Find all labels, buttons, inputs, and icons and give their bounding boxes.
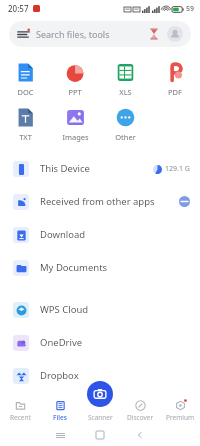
button[interactable]: Scanner bbox=[87, 381, 113, 407]
button[interactable]: Back bbox=[120, 424, 160, 446]
staticText: DOC bbox=[17, 87, 34, 97]
staticText: Evernote bbox=[40, 402, 190, 415]
button[interactable]: PDF bbox=[150, 59, 200, 100]
button[interactable]: Collapse bbox=[179, 196, 190, 207]
button[interactable]: Premium bbox=[160, 399, 200, 424]
staticText: XLS bbox=[119, 87, 132, 97]
button[interactable]: Home bbox=[80, 424, 120, 446]
staticText: 59 bbox=[186, 4, 195, 14]
button[interactable]: Dropbox bbox=[0, 359, 200, 392]
button[interactable]: TXT bbox=[0, 104, 50, 145]
button[interactable]: Received from other apps bbox=[0, 185, 200, 218]
button[interactable]: Recents bbox=[40, 424, 80, 446]
button[interactable]: Scanner bbox=[80, 399, 120, 424]
staticText: 129.1 G bbox=[165, 164, 190, 174]
staticText: PPT bbox=[68, 87, 82, 97]
staticText: TXT bbox=[19, 132, 32, 142]
staticText: OneDrive bbox=[40, 336, 190, 349]
staticText: WPS Cloud bbox=[40, 303, 190, 316]
staticText: Discover bbox=[127, 413, 154, 422]
button[interactable]: WPS Cloud bbox=[0, 293, 200, 326]
staticText: Search files, tools bbox=[36, 28, 148, 40]
button[interactable]: Other bbox=[100, 104, 150, 145]
button[interactable]: Evernote bbox=[0, 392, 200, 425]
staticText: Scanner bbox=[88, 413, 113, 422]
staticText: Other bbox=[115, 132, 136, 142]
button[interactable]: DOC bbox=[0, 59, 50, 100]
button[interactable]: PPT bbox=[50, 59, 100, 100]
button[interactable]: Account bbox=[167, 26, 183, 42]
staticText: Received from other apps bbox=[40, 195, 179, 208]
other: Menu bbox=[17, 28, 30, 41]
button[interactable]: Add WebDAV / FT... bbox=[0, 425, 200, 446]
button[interactable]: OneDrive bbox=[0, 326, 200, 359]
button[interactable]: Recent bbox=[0, 399, 40, 424]
button[interactable]: Menu bbox=[9, 21, 191, 47]
button[interactable]: Images bbox=[50, 104, 100, 145]
other: Recent bbox=[148, 28, 160, 40]
button[interactable]: Download bbox=[0, 218, 200, 251]
staticText: Premium bbox=[166, 413, 195, 422]
button[interactable]: This Device bbox=[0, 152, 200, 185]
staticText: PDF bbox=[168, 87, 182, 97]
staticText: Dropbox bbox=[40, 369, 190, 382]
staticText: Recent bbox=[10, 413, 31, 422]
staticText: Files bbox=[53, 413, 67, 422]
staticText: This Device bbox=[40, 162, 153, 175]
staticText: Add WebDAV / FT... bbox=[40, 429, 190, 442]
button[interactable]: My Documents bbox=[0, 251, 200, 284]
staticText: Images bbox=[62, 132, 89, 142]
staticText: 20:57 bbox=[8, 3, 29, 14]
staticText: My Documents bbox=[40, 261, 190, 274]
staticText: Download bbox=[40, 228, 190, 241]
button[interactable]: Files bbox=[40, 399, 80, 424]
button[interactable]: Discover bbox=[120, 399, 160, 424]
button[interactable]: XLS bbox=[100, 59, 150, 100]
